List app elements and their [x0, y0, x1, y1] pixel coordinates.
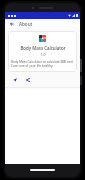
staticText: Body Mass Calculator	[20, 45, 66, 51]
staticText: 1.0	[40, 52, 46, 57]
button[interactable]: Send feedback	[10, 75, 19, 84]
button[interactable]: Body Mass Calculator	[8, 31, 77, 72]
button[interactable]: Share	[23, 75, 32, 84]
staticText: About	[19, 21, 33, 27]
staticText: Body Mass Calculator to calculate BMI an…	[11, 60, 74, 68]
button[interactable]: Back	[8, 20, 16, 28]
